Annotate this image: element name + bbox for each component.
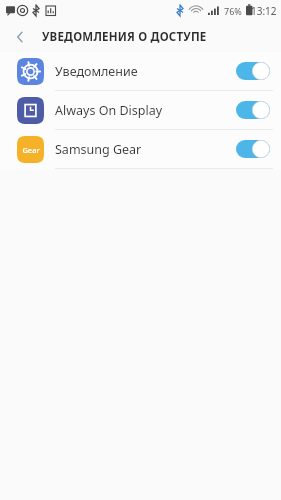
button[interactable]: Уведомление (0, 52, 281, 90)
button[interactable]: Toggle (236, 140, 270, 158)
staticText: Gear (22, 145, 40, 155)
staticText: Уведомление (55, 63, 236, 80)
button[interactable]: Toggle (236, 101, 270, 119)
button[interactable]: Back (8, 25, 32, 49)
staticText: Samsung Gear (55, 141, 236, 158)
staticText: 76% (224, 5, 242, 17)
button[interactable]: Always On Display (0, 91, 281, 129)
button[interactable]: Toggle (236, 62, 270, 80)
staticText: 13:12 (251, 4, 277, 18)
staticText: УВЕДОМЛЕНИЯ О ДОСТУПЕ (42, 29, 207, 45)
staticText: Always On Display (55, 102, 236, 119)
button[interactable]: Gear (0, 130, 281, 168)
